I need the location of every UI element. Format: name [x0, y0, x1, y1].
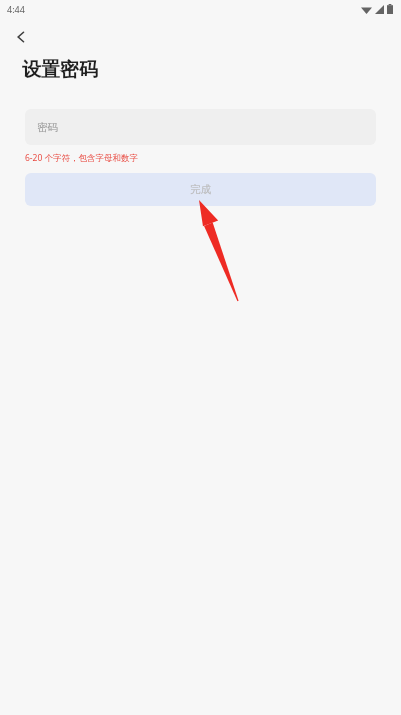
- staticText: 完成: [190, 183, 211, 196]
- button[interactable]: 密码: [25, 109, 376, 145]
- button[interactable]: Back: [6, 22, 36, 52]
- button[interactable]: 完成: [25, 173, 376, 206]
- staticText: 6-20 个字符，包含字母和数字: [25, 152, 139, 164]
- staticText: 密码: [37, 121, 58, 134]
- staticText: 设置密码: [22, 58, 98, 82]
- staticText: 4:44: [7, 3, 25, 15]
